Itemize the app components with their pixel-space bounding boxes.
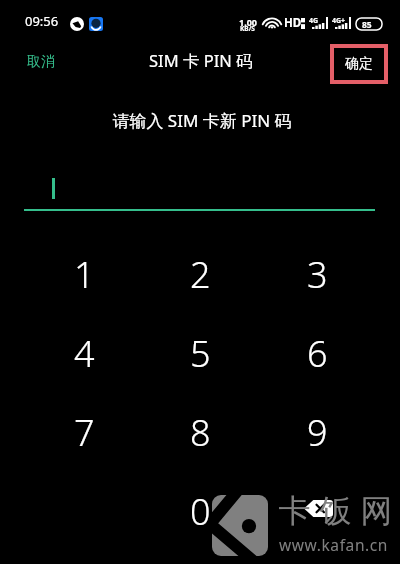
button[interactable]: 4 — [26, 314, 142, 393]
button[interactable]: Delete — [259, 472, 376, 551]
staticText: 4 — [74, 329, 95, 378]
button[interactable]: 1 — [26, 235, 142, 314]
staticText: 3 — [307, 250, 328, 299]
button[interactable]: 0 — [142, 472, 259, 551]
staticText: 6 — [307, 329, 328, 378]
button[interactable]: 确定 — [330, 44, 388, 84]
staticText: 0 — [190, 487, 211, 536]
staticText: 卡饭网 — [274, 491, 397, 531]
staticText: 7 — [74, 408, 95, 457]
staticText: 1.00 — [239, 16, 257, 28]
staticText: 09:56 — [25, 12, 59, 30]
button[interactable]: 取消 — [17, 45, 65, 79]
button[interactable]: 9 — [259, 393, 376, 472]
staticText: 请输入 SIM 卡新 PIN 码 — [2, 109, 400, 132]
staticText: 确定 — [345, 55, 373, 73]
button[interactable]: 7 — [26, 393, 142, 472]
staticText: 1 — [74, 250, 95, 299]
staticText: 85 — [362, 19, 372, 31]
staticText: 8 — [190, 408, 211, 457]
staticText: SIM 卡 PIN 码 — [149, 49, 253, 72]
other: Delete — [304, 500, 333, 517]
staticText: 取消 — [27, 53, 55, 71]
staticText: 4G+ — [332, 16, 346, 26]
staticText: 4G — [309, 16, 319, 26]
staticText: www.kafan.cn — [279, 534, 389, 555]
button[interactable]: 3 — [259, 235, 376, 314]
staticText: 9 — [307, 408, 328, 457]
staticText: 2 — [190, 250, 211, 299]
button[interactable]: 8 — [142, 393, 259, 472]
staticText: HD — [284, 15, 302, 31]
staticText: KB/S — [240, 24, 255, 33]
button[interactable]: 5 — [142, 314, 259, 393]
button[interactable]: 6 — [259, 314, 376, 393]
button[interactable]: 2 — [142, 235, 259, 314]
staticText: 5 — [190, 329, 211, 378]
